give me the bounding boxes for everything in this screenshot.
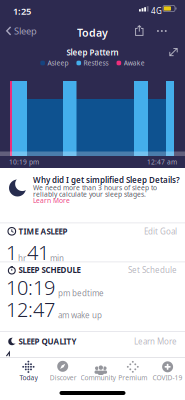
staticText: SLEEP SCHEDULE (18, 265, 80, 275)
staticText: Learn More (134, 336, 177, 347)
staticText: Sleep (14, 25, 37, 37)
button[interactable]: Learn More (134, 336, 177, 347)
button[interactable]: Sleep (6, 25, 37, 37)
staticText: 10:19 (6, 274, 55, 301)
staticText: 10:19 pm (9, 157, 39, 166)
button[interactable]: Learn More (33, 196, 70, 205)
staticText: Restless (83, 59, 108, 67)
staticText: 12:47 (6, 296, 55, 323)
staticText: SLEEP QUALITY (18, 336, 76, 347)
button[interactable]: Edit Goal (144, 226, 177, 237)
staticText: Today (77, 25, 108, 40)
staticText: Discover (50, 373, 77, 382)
staticText: 41 (27, 239, 49, 266)
staticText: pm bedtime (58, 288, 104, 298)
staticText: Edit Goal (144, 226, 177, 237)
button[interactable] (135, 25, 144, 36)
staticText: We need more than 3 hours of sleep to (33, 183, 157, 192)
staticText: 1:25 (13, 5, 31, 17)
button[interactable] (157, 25, 167, 36)
button[interactable]: Set Schedule (128, 265, 177, 275)
button[interactable] (168, 46, 179, 57)
staticText: Community (81, 373, 115, 382)
staticText: Set Schedule (128, 265, 177, 275)
staticText: am wake up (58, 310, 102, 320)
button[interactable]: Premium (115, 359, 150, 383)
staticText: 4G (151, 5, 162, 16)
button[interactable]: Today (11, 359, 46, 383)
button[interactable]: Discover (46, 359, 81, 383)
staticText: Why did I get simplified Sleep Details? (33, 174, 180, 185)
staticText: min (50, 253, 64, 263)
staticText: COVID-19 (153, 373, 183, 382)
button[interactable]: COVID-19 (150, 359, 185, 383)
staticText: Awake (124, 59, 145, 67)
staticText: 1 (6, 239, 17, 266)
staticText: hr (18, 253, 26, 263)
staticText: reliably calculate your sleep stages. (33, 190, 146, 199)
button[interactable]: Community (81, 359, 115, 383)
staticText: Sleep Pattern (66, 47, 118, 58)
staticText: Today (19, 373, 37, 382)
staticText: Premium (118, 373, 147, 382)
staticText: Asleep (47, 59, 68, 67)
staticText: 12:47 am (147, 157, 177, 166)
staticText: Learn More (33, 196, 70, 205)
staticText: TIME ASLEEP (18, 226, 67, 237)
